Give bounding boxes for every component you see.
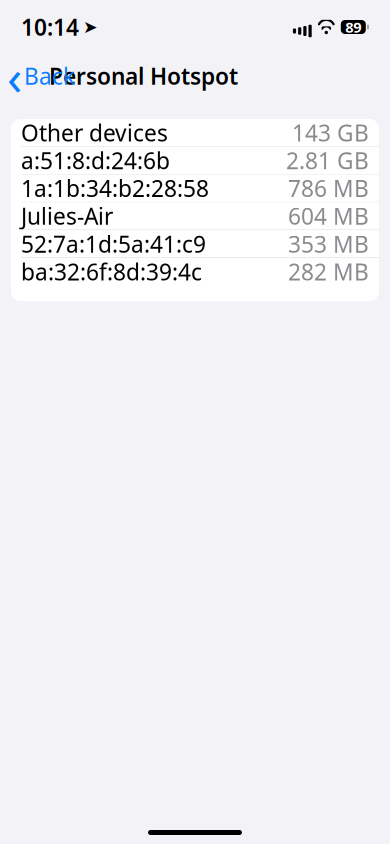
staticText: 2.81 GB (286, 145, 369, 175)
staticText: Back (24, 61, 75, 91)
staticText: Julies-Air (21, 201, 113, 231)
button[interactable]: ‹ (3, 54, 85, 98)
staticText: 604 MB (288, 201, 369, 231)
button[interactable]: a:51:8:d:24:6b (11, 147, 379, 174)
button[interactable]: Other devices (11, 119, 379, 146)
staticText: 1a:1b:34:b2:28:58 (21, 173, 209, 203)
staticText: 786 MB (288, 173, 369, 203)
button[interactable]: 1a:1b:34:b2:28:58 (11, 175, 379, 202)
staticText: 143 GB (292, 118, 369, 148)
button[interactable]: ba:32:6f:8d:39:4c (11, 258, 379, 285)
staticText: a:51:8:d:24:6b (21, 145, 170, 175)
staticText: 89 (345, 17, 361, 37)
staticText: ➤ (83, 17, 98, 37)
staticText: 10:14 (21, 12, 79, 42)
staticText: ba:32:6f:8d:39:4c (21, 257, 202, 287)
staticText: 282 MB (288, 257, 369, 287)
staticText: Personal Hotspot (49, 61, 238, 91)
button[interactable]: 52:7a:1d:5a:41:c9 (11, 230, 379, 257)
button[interactable]: Julies-Air (11, 202, 379, 230)
staticText: 52:7a:1d:5a:41:c9 (21, 229, 206, 259)
staticText: Other devices (21, 118, 168, 148)
staticText: ‹ (7, 43, 22, 109)
staticText: 353 MB (288, 229, 369, 259)
